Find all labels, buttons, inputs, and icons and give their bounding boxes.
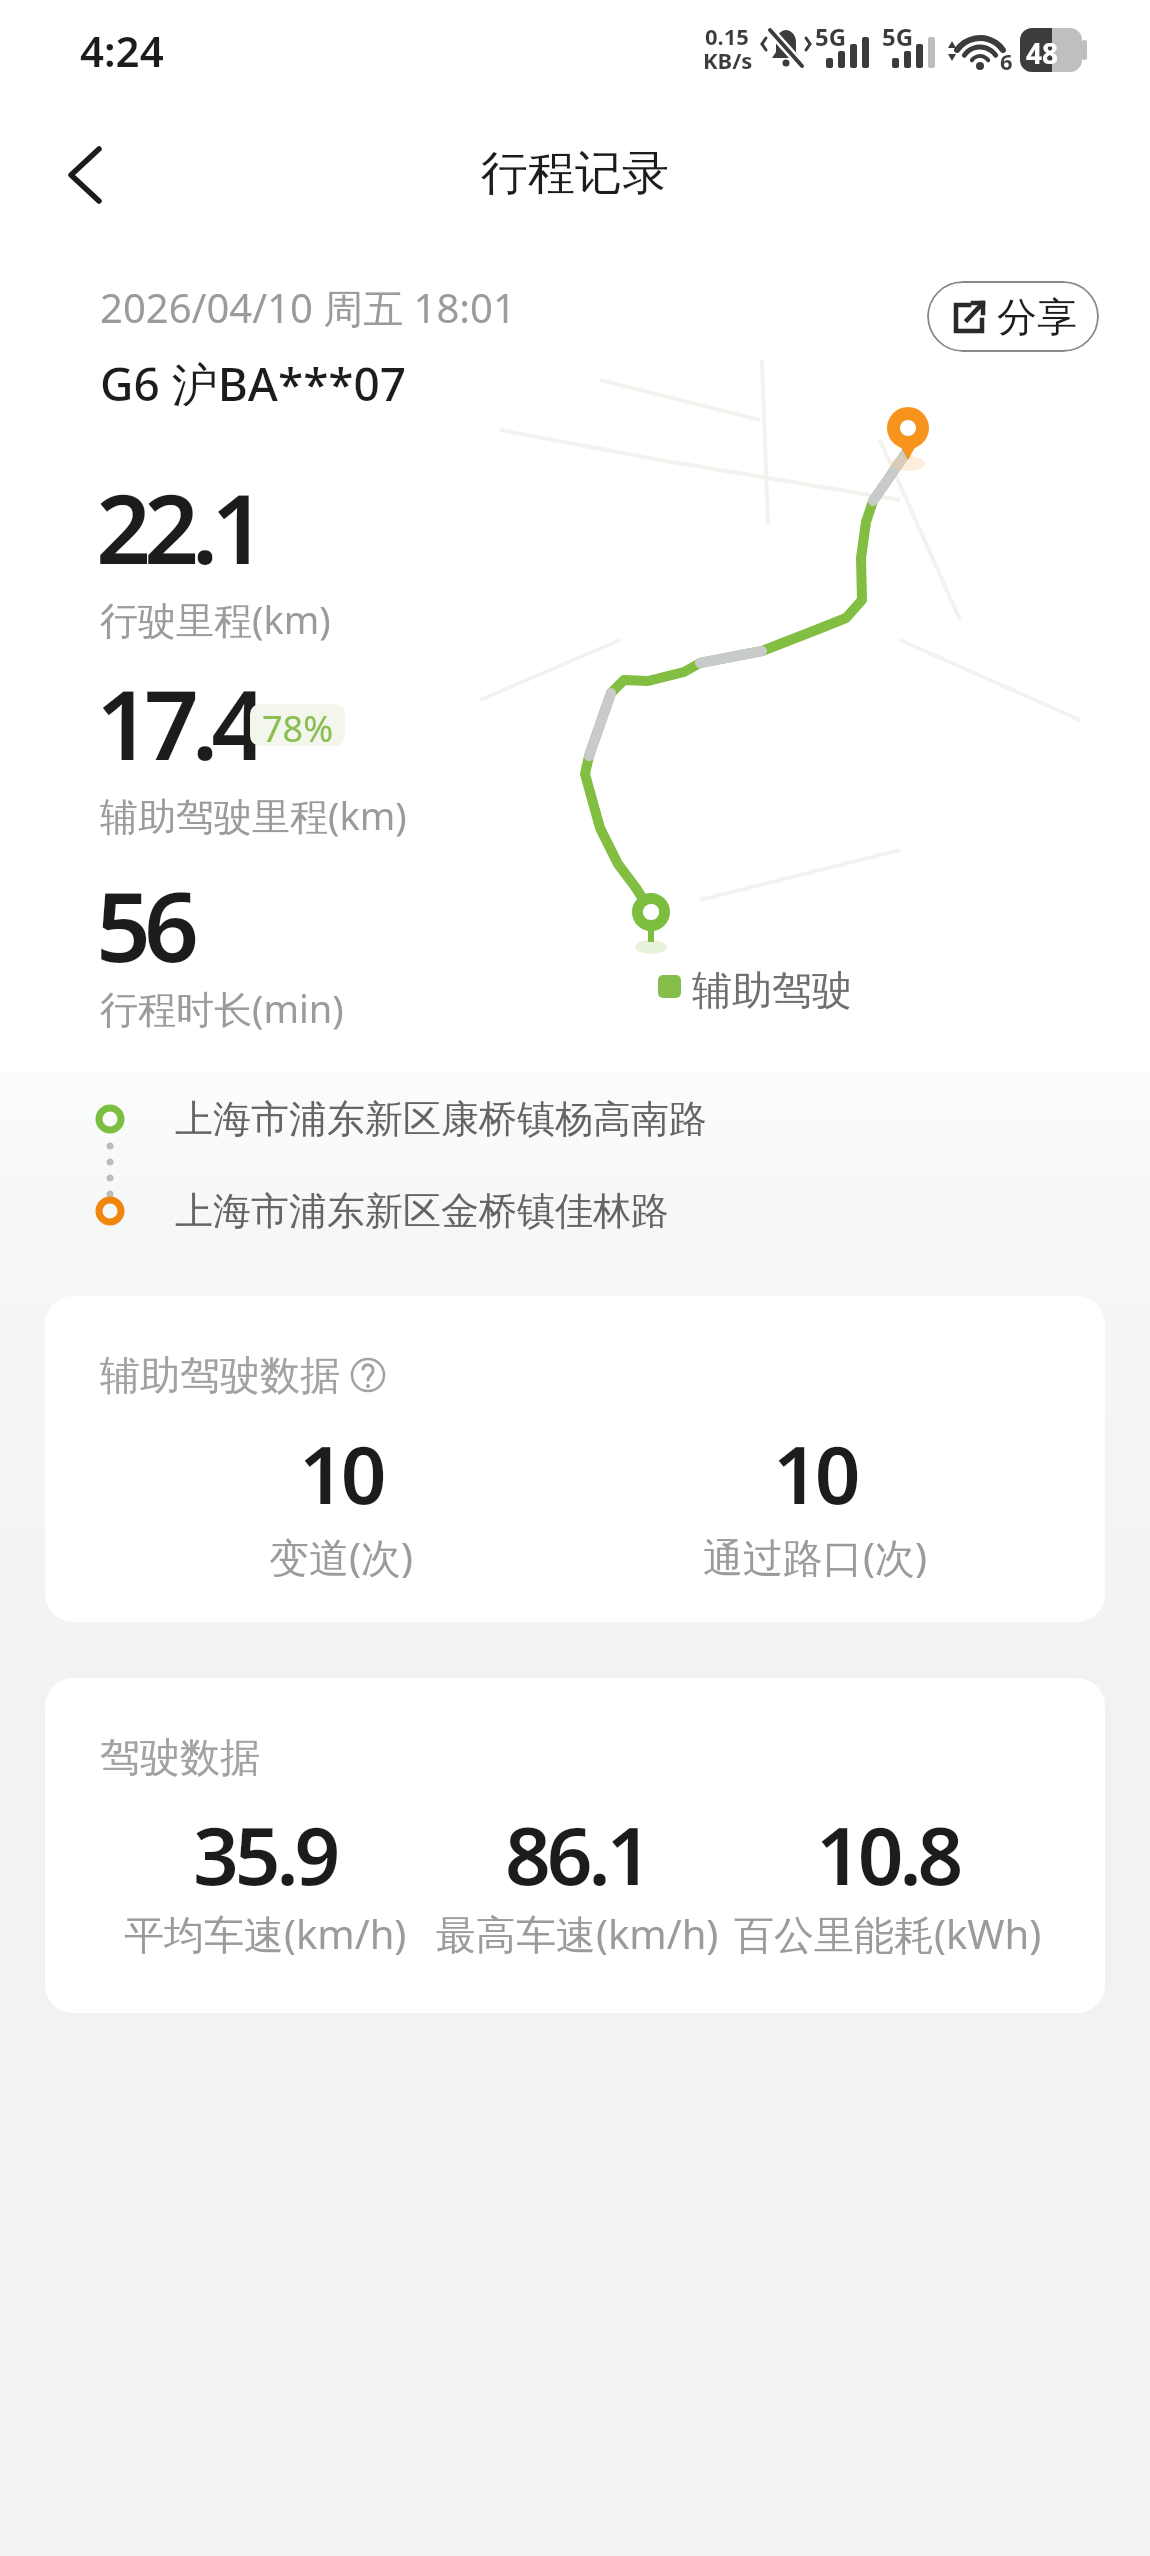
staticText: 5G [882, 20, 914, 53]
staticText: 78% [262, 704, 334, 746]
staticText: G6 沪BA***07 [100, 352, 407, 415]
staticText: 分享 [997, 292, 1077, 342]
staticText: 上海市浦东新区康桥镇杨高南路 [175, 1095, 707, 1143]
staticText: 10 [773, 1418, 857, 1527]
staticText: 10 [299, 1418, 383, 1527]
staticText: 最高车速(km/h) [436, 1906, 719, 1961]
staticText: 行程记录 [481, 144, 669, 203]
staticText: 5G [815, 20, 847, 53]
staticText: 辅助驾驶 [692, 965, 852, 1015]
staticText: 56 [96, 859, 192, 990]
staticText: 辅助驾驶里程(km) [100, 789, 407, 841]
staticText: 平均车速(km/h) [124, 1906, 407, 1961]
staticText: 通过路口(次) [703, 1529, 927, 1584]
staticText: 行驶里程(km) [100, 593, 331, 645]
staticText: 35.9 [193, 1799, 337, 1908]
staticText: 辅助驾驶数据 [100, 1350, 340, 1400]
staticText: KB/s [703, 45, 753, 75]
button[interactable] [350, 1357, 386, 1393]
staticText: 行程时长(min) [100, 982, 344, 1034]
staticText: 17.4 [96, 657, 260, 788]
staticText: 百公里能耗(kWh) [734, 1906, 1042, 1961]
staticText: 86.1 [505, 1799, 649, 1908]
staticText: 驾驶数据 [100, 1732, 260, 1782]
staticText: 变道(次) [269, 1529, 413, 1584]
staticText: 22.1 [96, 461, 260, 592]
staticText: 10.8 [816, 1799, 960, 1908]
staticText: 上海市浦东新区金桥镇佳林路 [175, 1187, 669, 1235]
staticText: 48 [1026, 34, 1059, 72]
button[interactable]: 分享 [927, 281, 1099, 352]
button[interactable] [40, 130, 130, 220]
staticText: 2026/04/10 周五 18:01 [100, 280, 516, 335]
staticText: 4:24 [80, 22, 164, 79]
staticText: 6 [1000, 46, 1013, 76]
staticText: 0.15 [705, 21, 749, 51]
